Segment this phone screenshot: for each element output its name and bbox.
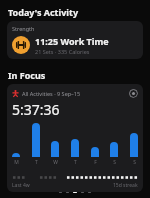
button[interactable]: Strength [7,21,143,59]
button[interactable]: Activity figure [7,84,143,192]
other: Activity figure [12,90,19,97]
staticText: M [14,159,19,166]
staticText: S [133,159,136,166]
staticText: In Focus [8,69,46,81]
staticText: 11:25 Work Time [35,35,109,47]
staticText: All Activities · 9 Sep–15 [22,90,81,97]
staticText: S [113,159,116,166]
staticText: F [94,159,97,166]
staticText: T [74,159,77,166]
staticText: Last 4w [12,182,30,189]
staticText: 15d streak [113,182,138,189]
staticText: 21 Sets · 335 Calories [35,48,90,55]
staticText: Strength [12,25,35,32]
button[interactable]: Options [128,88,138,98]
staticText: Today's Activity [8,6,79,18]
staticText: 5:37:36 [12,100,60,119]
staticText: W [53,159,58,166]
staticText: T [35,159,38,166]
